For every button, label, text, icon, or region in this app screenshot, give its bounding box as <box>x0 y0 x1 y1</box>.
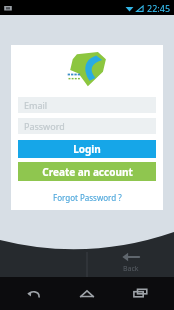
button[interactable]: Password <box>18 118 156 134</box>
button[interactable]: Home <box>68 277 106 310</box>
button[interactable]: Back <box>87 248 174 277</box>
button[interactable]: Recent apps <box>121 277 159 310</box>
staticText: Forgot Password ? <box>53 192 122 203</box>
staticText: Email <box>24 99 48 111</box>
button[interactable]: Email <box>18 97 156 113</box>
staticText: Back <box>123 264 139 274</box>
button[interactable]: Login <box>18 140 156 158</box>
staticText: 22:45 <box>147 2 171 14</box>
staticText: Create an account <box>42 165 133 179</box>
staticText: Password <box>24 120 65 132</box>
button[interactable]: Create an account <box>18 162 156 181</box>
staticText: Login <box>73 142 101 156</box>
button[interactable]: Forgot Password ? <box>47 190 128 205</box>
button[interactable]: Back <box>15 277 53 310</box>
